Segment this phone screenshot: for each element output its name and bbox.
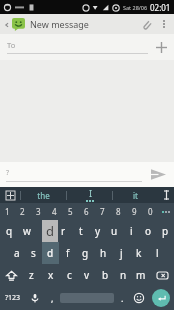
staticText: v: [84, 268, 90, 282]
button[interactable]: n: [114, 264, 132, 286]
button[interactable]: More symbols: [158, 203, 174, 220]
staticText: .: [121, 292, 124, 304]
button[interactable]: 5: [62, 203, 78, 220]
button[interactable]: .: [114, 286, 130, 310]
button[interactable]: k: [130, 242, 148, 264]
button[interactable]: 4: [46, 203, 62, 220]
staticText: l: [156, 246, 159, 260]
staticText: 4: [52, 206, 57, 217]
staticText: u: [111, 224, 118, 238]
staticText: 8: [116, 206, 121, 217]
button[interactable]: Backspace: [150, 264, 174, 286]
button[interactable]: Send: [142, 162, 174, 187]
button[interactable]: the: [21, 187, 66, 203]
button[interactable]: 1: [0, 203, 15, 220]
staticText: ,: [51, 292, 54, 304]
staticText: c: [67, 268, 72, 282]
staticText: r: [61, 224, 66, 238]
button[interactable]: 7: [94, 203, 110, 220]
button[interactable]: ?123: [0, 286, 26, 310]
button[interactable]: u: [106, 220, 123, 242]
staticText: d: [47, 246, 54, 260]
button[interactable]: x: [41, 264, 60, 286]
staticText: y: [95, 224, 101, 238]
staticText: e: [42, 224, 48, 238]
button[interactable]: Add recipient: [148, 34, 174, 60]
button[interactable]: f: [59, 242, 76, 264]
staticText: w: [23, 224, 31, 238]
button[interactable]: j: [112, 242, 130, 264]
button[interactable]: z: [22, 264, 41, 286]
button[interactable]: Enter: [152, 289, 170, 307]
staticText: 9: [132, 206, 137, 217]
staticText: 0: [148, 206, 153, 217]
button[interactable]: v: [78, 264, 96, 286]
staticText: t: [79, 224, 83, 238]
staticText: ?: [6, 168, 10, 178]
button[interactable]: 8: [110, 203, 126, 220]
button[interactable]: b: [96, 264, 114, 286]
button[interactable]: s: [25, 242, 42, 264]
staticText: New message: [30, 18, 89, 30]
staticText: i: [130, 224, 133, 238]
button[interactable]: Expand suggestions: [158, 187, 174, 203]
button[interactable]: o: [140, 220, 157, 242]
button[interactable]: ?: [6, 168, 142, 182]
staticText: o: [145, 224, 152, 238]
staticText: j: [120, 246, 123, 260]
button[interactable]: t: [72, 220, 89, 242]
button[interactable]: 0: [142, 203, 158, 220]
staticText: 3: [36, 206, 41, 217]
staticText: h: [100, 246, 107, 260]
button[interactable]: q: [0, 220, 18, 242]
staticText: d: [46, 222, 54, 240]
button[interactable]: m: [132, 264, 150, 286]
button[interactable]: ,: [44, 286, 60, 310]
button[interactable]: c: [60, 264, 78, 286]
staticText: 1: [5, 206, 10, 217]
button[interactable]: a: [8, 242, 25, 264]
button[interactable]: d: [42, 242, 59, 264]
staticText: the: [37, 190, 50, 201]
button[interactable]: r: [54, 220, 72, 242]
button[interactable]: i: [123, 220, 140, 242]
button[interactable]: 9: [126, 203, 142, 220]
button[interactable]: 3: [30, 203, 46, 220]
staticText: 2: [20, 206, 25, 217]
button[interactable]: l: [148, 242, 166, 264]
staticText: m: [136, 268, 146, 282]
button[interactable]: w: [18, 220, 36, 242]
button[interactable]: More options: [156, 16, 172, 32]
button[interactable]: To: [7, 40, 148, 54]
button[interactable]: Emoji: [130, 286, 148, 310]
button[interactable]: e: [36, 220, 54, 242]
button[interactable]: p: [157, 220, 174, 242]
button[interactable]: it: [113, 187, 158, 203]
button[interactable]: Voice input: [26, 286, 44, 310]
staticText: 6: [84, 206, 89, 217]
staticText: 5: [68, 206, 73, 217]
staticText: I: [89, 188, 92, 199]
staticText: 7: [100, 206, 105, 217]
staticText: z: [29, 268, 34, 282]
staticText: 02:01: [150, 2, 171, 13]
button[interactable]: 2: [15, 203, 30, 220]
button[interactable]: h: [94, 242, 112, 264]
button[interactable]: Attach: [136, 14, 156, 34]
staticText: p: [162, 224, 169, 238]
button[interactable]: I: [67, 187, 112, 203]
button[interactable]: Shift: [0, 264, 22, 286]
button[interactable]: g: [76, 242, 94, 264]
staticText: ?123: [5, 293, 21, 303]
button[interactable]: Keyboard settings: [0, 187, 20, 203]
button[interactable]: y: [89, 220, 106, 242]
staticText: n: [120, 268, 127, 282]
staticText: k: [136, 246, 142, 260]
button[interactable]: 6: [78, 203, 94, 220]
staticText: Sat 28/06: [123, 4, 148, 11]
staticText: To: [7, 40, 16, 50]
staticText: b: [102, 268, 109, 282]
staticText: s: [31, 246, 36, 260]
button[interactable]: Navigate up: [2, 18, 27, 31]
